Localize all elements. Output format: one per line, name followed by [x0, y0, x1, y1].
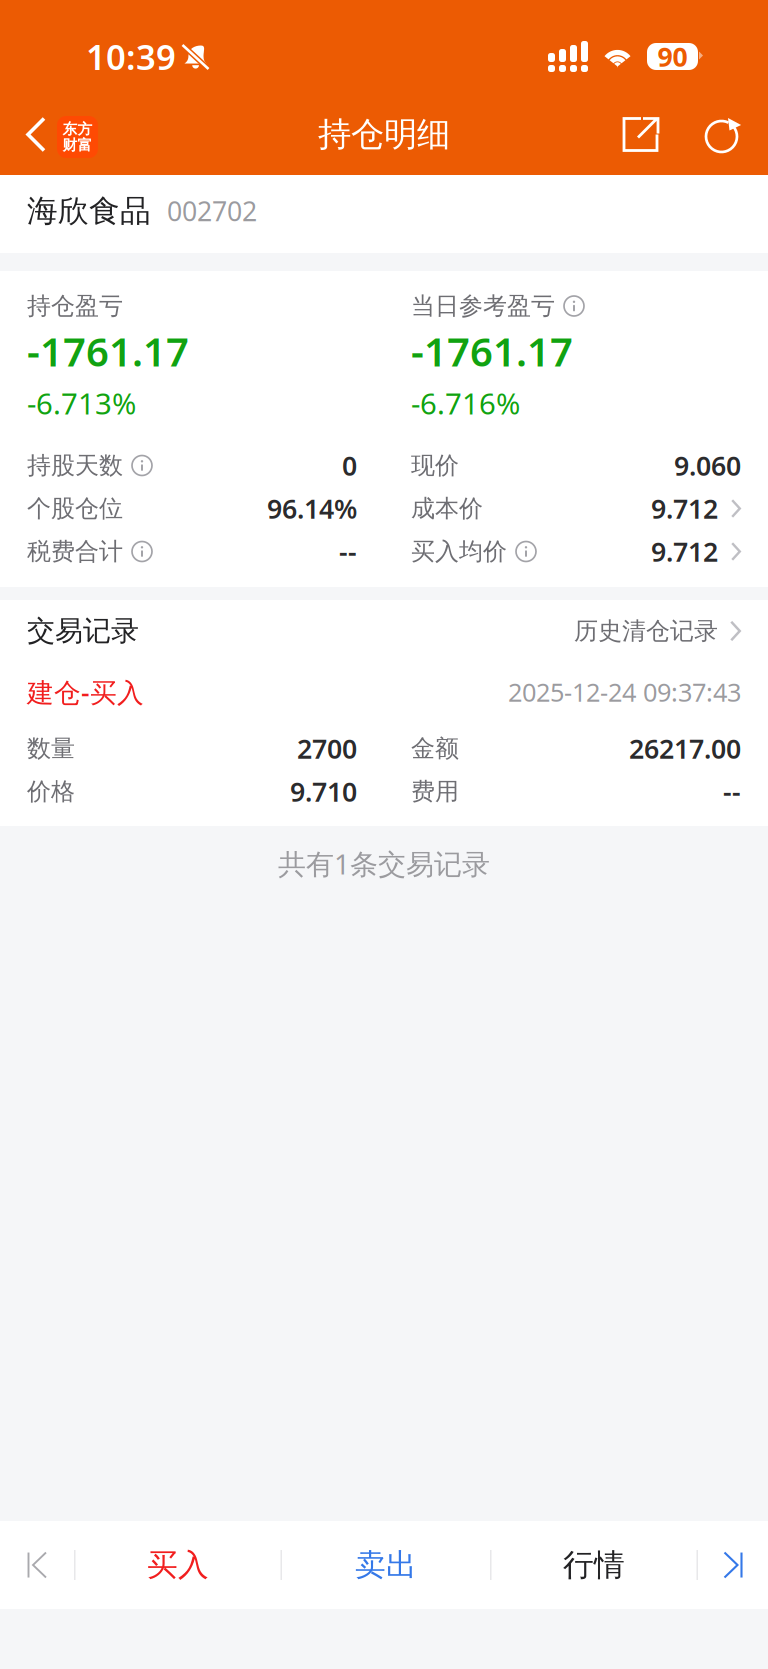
staticText: 买入均价: [411, 537, 507, 566]
button[interactable]: 卖出: [282, 1521, 490, 1609]
staticText: 买入: [147, 1546, 209, 1584]
staticText: 持仓明细: [318, 114, 450, 155]
staticText: 90: [657, 39, 687, 74]
staticText: -1761.17: [27, 324, 189, 377]
staticText: 10:39: [86, 33, 176, 79]
staticText: 财富: [62, 136, 92, 154]
staticText: 002702: [167, 193, 257, 229]
staticText: 96.14%: [267, 491, 357, 526]
staticText: 东方: [62, 120, 92, 138]
button[interactable]: Last: [698, 1521, 768, 1609]
staticText: 交易记录: [27, 614, 139, 648]
staticText: 现价: [411, 451, 459, 480]
button[interactable]: 买入: [75, 1521, 280, 1609]
staticText: 个股仓位: [27, 494, 123, 523]
staticText: 9.710: [290, 774, 357, 809]
button[interactable]: Share: [613, 101, 669, 167]
staticText: -1761.17: [411, 324, 573, 377]
staticText: 卖出: [355, 1546, 417, 1584]
staticText: 费用: [411, 777, 459, 806]
staticText: 税费合计: [27, 537, 123, 566]
button[interactable]: Refresh: [694, 101, 750, 167]
staticText: 2700: [297, 731, 357, 766]
staticText: -6.716%: [411, 383, 520, 422]
staticText: 0: [342, 448, 357, 483]
staticText: 海欣食品: [27, 192, 151, 230]
staticText: 9.060: [674, 448, 741, 483]
button[interactable]: 行情: [491, 1521, 696, 1609]
staticText: 金额: [411, 734, 459, 763]
staticText: -6.713%: [27, 383, 136, 422]
button[interactable]: 历史清仓记录: [574, 616, 741, 646]
staticText: 共有1条交易记录: [278, 845, 490, 882]
staticText: 历史清仓记录: [574, 616, 718, 646]
staticText: --: [339, 534, 357, 569]
staticText: 建仓-买入: [27, 674, 144, 710]
staticText: 数量: [27, 734, 75, 763]
staticText: 持仓盈亏: [27, 291, 123, 321]
staticText: --: [723, 774, 741, 809]
staticText: 2025-12-24 09:37:43: [508, 675, 741, 709]
staticText: 成本价: [411, 494, 483, 523]
button[interactable]: Back: [0, 95, 98, 173]
button[interactable]: First: [0, 1521, 74, 1609]
staticText: 当日参考盈亏: [411, 291, 555, 321]
staticText: 持股天数: [27, 451, 123, 480]
staticText: 9.712: [651, 534, 718, 569]
staticText: 行情: [563, 1546, 625, 1584]
staticText: 26217.00: [629, 731, 741, 766]
staticText: 价格: [27, 777, 75, 806]
staticText: 9.712: [651, 491, 718, 526]
